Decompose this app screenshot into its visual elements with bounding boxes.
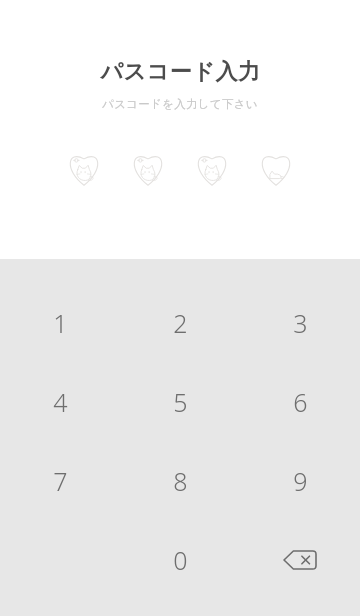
staticText: 5 [173,385,188,419]
button[interactable]: Delete [240,520,360,599]
button[interactable]: 7 [0,441,120,520]
button[interactable]: 5 [120,362,240,441]
button[interactable]: 8 [120,441,240,520]
button[interactable]: Passcode digit [65,149,103,187]
button[interactable]: 9 [240,441,360,520]
staticText: 9 [293,464,308,498]
button[interactable]: 2 [120,283,240,362]
staticText: 6 [293,385,308,419]
staticText: 7 [53,464,68,498]
staticText: 0 [173,543,188,577]
staticText: パスコード入力 [100,58,261,86]
button[interactable]: 0 [120,520,240,599]
button[interactable]: 1 [0,283,120,362]
button[interactable]: Passcode digit [129,149,167,187]
button[interactable]: 6 [240,362,360,441]
button[interactable]: 4 [0,362,120,441]
staticText: 1 [53,306,68,340]
staticText: 3 [293,306,308,340]
button[interactable]: Passcode digit [257,149,295,187]
staticText: 8 [173,464,188,498]
staticText: 4 [53,385,68,419]
button[interactable]: 3 [240,283,360,362]
staticText: パスコードを入力して下さい [102,97,258,111]
staticText: 2 [173,306,188,340]
button[interactable]: Passcode digit [193,149,231,187]
